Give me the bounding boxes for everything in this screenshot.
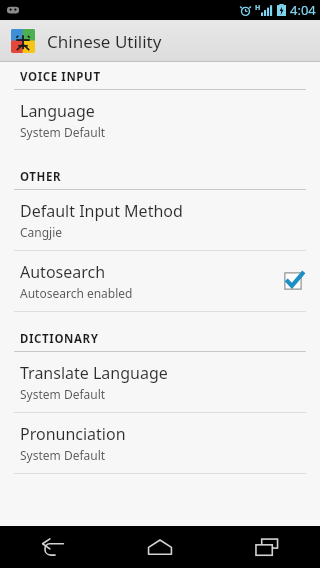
button[interactable]: Recent apps <box>213 526 320 568</box>
other: Autosearch toggle <box>280 268 306 294</box>
button[interactable]: Default Input Method <box>0 190 320 251</box>
button[interactable]: Language <box>0 90 320 150</box>
staticText: Autosearch enabled <box>20 285 133 301</box>
staticText: 4:04 <box>290 1 316 19</box>
staticText: Translate Language <box>20 362 168 384</box>
staticText: Autosearch <box>20 261 106 283</box>
staticText: H <box>255 3 261 13</box>
staticText: Cangjie <box>20 224 63 240</box>
staticText: DICTIONARY <box>20 331 99 347</box>
staticText: Default Input Method <box>20 200 183 222</box>
button[interactable]: Pronunciation <box>0 413 320 474</box>
button[interactable]: Translate Language <box>0 352 320 413</box>
staticText: OTHER <box>20 169 62 185</box>
button[interactable]: Home <box>106 526 213 568</box>
staticText: Chinese Utility <box>47 30 162 53</box>
staticText: VOICE INPUT <box>20 69 101 85</box>
button[interactable]: Back <box>0 526 106 568</box>
staticText: System Default <box>20 447 106 463</box>
staticText: System Default <box>20 386 106 402</box>
button[interactable]: Autosearch <box>0 251 320 311</box>
staticText: Pronunciation <box>20 423 126 445</box>
staticText: Language <box>20 100 95 122</box>
staticText: System Default <box>20 124 106 140</box>
